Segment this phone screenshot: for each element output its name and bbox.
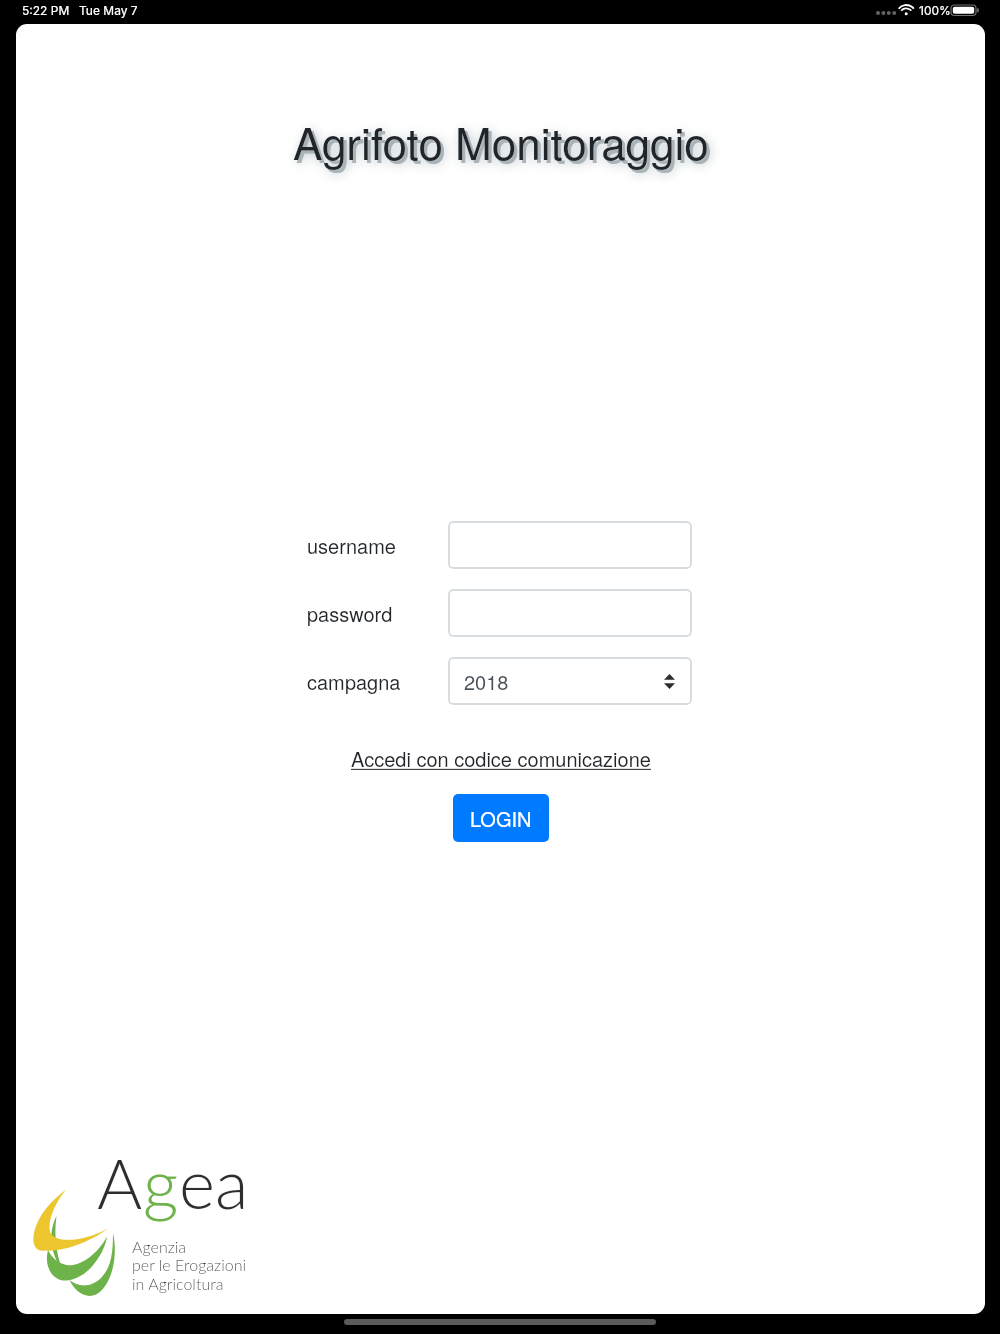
button[interactable]: username [448, 521, 692, 569]
button[interactable]: Seleziona campagna [448, 657, 692, 705]
staticText: ea [179, 1141, 249, 1224]
staticText: g [143, 1141, 179, 1224]
staticText: username [307, 531, 396, 560]
staticText: Agrifoto Monitoraggio [293, 109, 709, 172]
staticText: 100% [919, 3, 951, 18]
button[interactable]: password [448, 589, 692, 637]
staticText: Agrifoto Monitoraggio [296, 112, 712, 175]
staticText: Accedi con codice comunicazione [351, 744, 651, 773]
button[interactable]: LOGIN [453, 794, 549, 842]
staticText: Tue May 7 [79, 3, 138, 18]
staticText: LOGIN [470, 804, 532, 833]
button[interactable]: Accedi con codice comunicazione [348, 741, 654, 776]
staticText: A [97, 1141, 143, 1224]
staticText: 2018 [464, 667, 509, 696]
staticText: 5:22 PM [22, 3, 70, 18]
staticText: password [307, 599, 393, 628]
staticText: Agenzia per le Erogazioni in Agricoltura [132, 1237, 247, 1294]
staticText: campagna [307, 667, 401, 696]
